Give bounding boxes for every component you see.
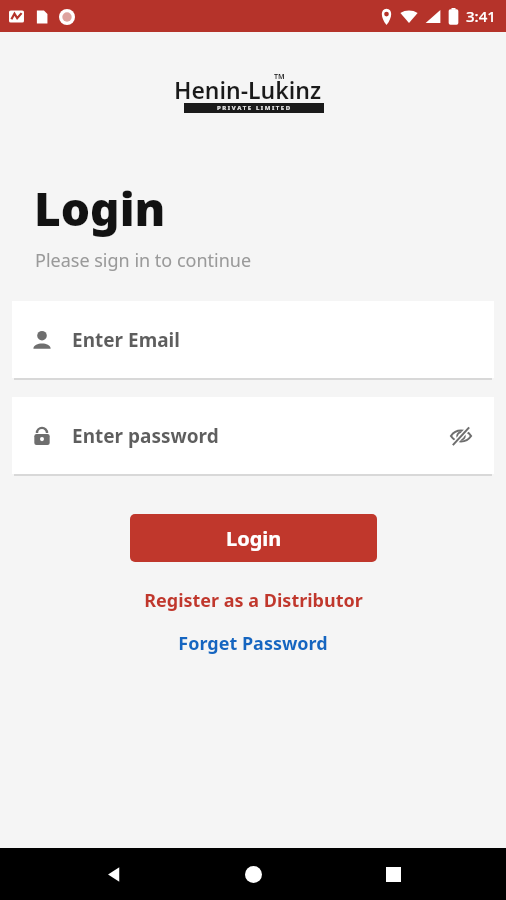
button[interactable]: Forget Password bbox=[0, 631, 506, 656]
button[interactable]: Back bbox=[88, 848, 140, 900]
staticText: Henin-Lukinz bbox=[174, 74, 322, 105]
staticText: Enter Email bbox=[72, 327, 180, 353]
button[interactable]: Recent apps bbox=[367, 848, 419, 900]
staticText: Enter password bbox=[72, 423, 219, 449]
button[interactable]: Enter password bbox=[12, 397, 494, 476]
staticText: Login bbox=[34, 177, 166, 240]
staticText: P R I V A T E L I M I T E D bbox=[217, 104, 291, 112]
staticText: TM bbox=[274, 72, 285, 82]
staticText: Please sign in to continue bbox=[35, 248, 252, 273]
staticText: Login bbox=[226, 525, 282, 552]
button[interactable]: Register as a Distributor bbox=[0, 588, 506, 613]
staticText: Register as a Distributor bbox=[144, 588, 363, 613]
button[interactable]: Home bbox=[227, 848, 279, 900]
staticText: 3:41 bbox=[466, 6, 496, 26]
button[interactable]: Show password bbox=[446, 421, 476, 451]
button[interactable]: Enter Email bbox=[12, 301, 494, 380]
button[interactable]: Login bbox=[130, 514, 377, 562]
staticText: Forget Password bbox=[178, 631, 328, 656]
